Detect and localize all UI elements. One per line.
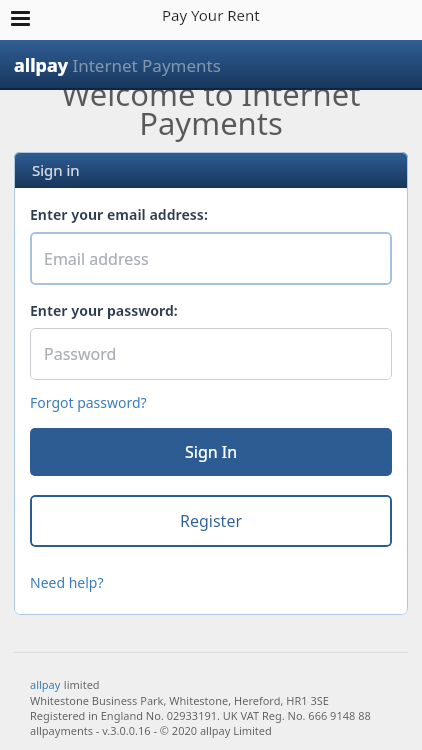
staticText: Email address [44,248,149,270]
staticText: Enter your email address: [30,205,208,224]
button[interactable]: allpay [30,677,61,692]
staticText: Registered in England No. 02933191. UK V… [30,708,371,723]
button[interactable]: Forgot password? [30,393,147,412]
button[interactable]: Sign In [30,428,392,476]
button[interactable]: Register [30,495,392,547]
staticText: allpay [14,53,68,78]
button[interactable]: Email address [30,232,392,285]
staticText: Pay Your Rent [162,5,260,25]
staticText: Sign in [32,160,80,180]
staticText: Register [180,510,243,532]
button[interactable]: Password [30,328,392,380]
button[interactable] [0,0,40,40]
staticText: Sign In [185,441,238,463]
staticText: Welcome to Internet [0,73,422,115]
staticText: Payments [0,102,422,144]
staticText: Internet Payments [68,54,221,77]
staticText: Whitestone Business Park, Whitestone, He… [30,693,329,708]
staticText: limited [61,677,100,692]
staticText: Password [44,343,117,365]
staticText: Enter your password: [30,301,178,320]
button[interactable]: Need help? [30,573,104,592]
staticText: allpayments - v.3.0.0.16 - © 2020 allpay… [30,723,272,738]
